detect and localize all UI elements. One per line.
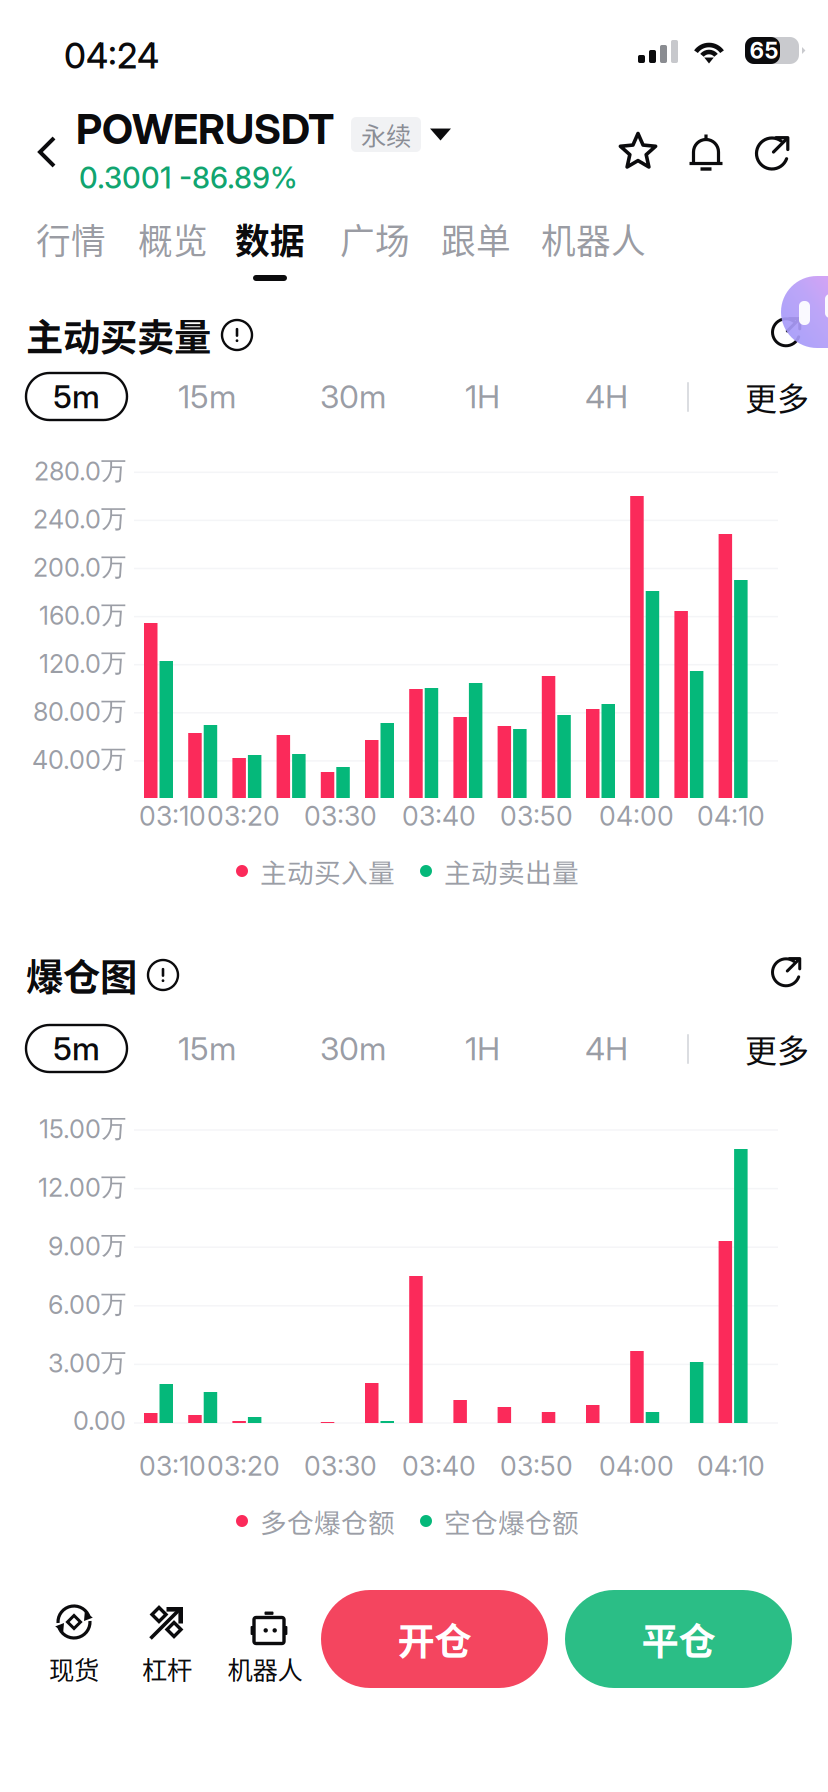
staticText: 6.00万 — [48, 1288, 126, 1320]
staticText: 03:40 — [402, 800, 476, 832]
button[interactable]: 4H — [571, 373, 642, 420]
button[interactable]: 行情 — [20, 208, 122, 270]
staticText: 03:50 — [500, 800, 573, 832]
staticText: 更多 — [745, 1025, 809, 1072]
staticText: 200.0万 — [33, 551, 126, 583]
button[interactable]: 5m — [26, 373, 127, 420]
staticText: 主动买入量 — [260, 852, 395, 890]
button[interactable]: Back — [14, 115, 80, 189]
button[interactable]: 1H — [451, 373, 514, 420]
staticText: 数据 — [235, 214, 305, 264]
staticText: 更多 — [745, 373, 809, 420]
staticText: 240.0万 — [33, 503, 126, 535]
staticText: 80.00万 — [33, 695, 126, 727]
staticText: 4H — [585, 377, 628, 416]
staticText: 15m — [178, 377, 236, 416]
staticText: 03:40 — [402, 1450, 476, 1482]
staticText: 永续 — [361, 116, 411, 153]
button[interactable]: 机器人 — [525, 208, 662, 270]
button[interactable]: 15m — [164, 373, 250, 420]
staticText: 04:10 — [697, 800, 765, 832]
staticText: POWERUSDT — [76, 104, 334, 154]
button[interactable]: 更多 — [731, 373, 823, 420]
button[interactable]: 1H — [451, 1025, 514, 1072]
staticText: 现货 — [49, 1650, 99, 1687]
staticText: 杠杆 — [142, 1650, 192, 1687]
staticText: 04:24 — [64, 35, 159, 77]
staticText: 平仓 — [641, 1612, 715, 1666]
staticText: 概览 — [138, 214, 208, 264]
staticText: 广场 — [340, 214, 410, 264]
button[interactable]: 机器人 — [209, 1603, 321, 1687]
staticText: 03:10 — [139, 800, 206, 832]
staticText: 5m — [53, 1029, 100, 1068]
button[interactable]: 现货 — [26, 1603, 122, 1687]
button[interactable]: 平仓 — [565, 1590, 792, 1688]
staticText: 30m — [320, 1029, 386, 1068]
button[interactable]: 广场 — [324, 208, 426, 270]
staticText: 行情 — [36, 214, 106, 264]
staticText: 跟单 — [441, 214, 511, 264]
staticText: 04:00 — [599, 1450, 674, 1482]
staticText: 机器人 — [227, 1650, 302, 1687]
staticText: 多仓爆仓额 — [260, 1502, 395, 1540]
staticText: 4H — [585, 1029, 628, 1068]
staticText: 12.00万 — [38, 1171, 126, 1203]
staticText: 9.00万 — [48, 1230, 126, 1262]
button[interactable]: 30m — [306, 1025, 400, 1072]
button[interactable]: Alerts — [670, 116, 742, 188]
button[interactable]: 跟单 — [425, 208, 527, 270]
button[interactable]: 开仓 — [321, 1590, 548, 1688]
staticText: 03:20 — [207, 1450, 280, 1482]
staticText: 3.00万 — [48, 1347, 126, 1379]
staticText: 主动买卖量 — [26, 308, 211, 362]
button[interactable]: 5m — [26, 1025, 127, 1072]
button[interactable]: Expand chart — [762, 947, 810, 995]
staticText: 5m — [53, 377, 100, 416]
button[interactable]: Expand chart — [762, 307, 810, 355]
staticText: 40.00万 — [32, 743, 126, 775]
staticText: 开仓 — [397, 1612, 471, 1666]
staticText: 03:30 — [304, 800, 377, 832]
staticText: 1H — [465, 377, 500, 416]
staticText: 15m — [178, 1029, 236, 1068]
staticText: 03:30 — [304, 1450, 377, 1482]
staticText: 04:10 — [697, 1450, 765, 1482]
button[interactable]: Share — [736, 116, 808, 188]
button[interactable]: 概览 — [122, 208, 224, 270]
staticText: 空仓爆仓额 — [444, 1502, 579, 1540]
button[interactable]: 更多 — [731, 1025, 823, 1072]
staticText: 0.3001 -86.89% — [79, 160, 298, 195]
button[interactable]: 30m — [306, 373, 400, 420]
staticText: 0.00 — [73, 1405, 126, 1436]
staticText: 04:00 — [599, 800, 674, 832]
staticText: 主动卖出量 — [444, 852, 579, 890]
button[interactable]: 15m — [164, 1025, 250, 1072]
staticText: 15.00万 — [39, 1112, 126, 1144]
staticText: 65 — [749, 37, 778, 64]
button[interactable]: 数据 — [219, 208, 321, 270]
staticText: 160.0万 — [39, 599, 126, 631]
staticText: 03:20 — [207, 800, 280, 832]
staticText: 30m — [320, 377, 386, 416]
button[interactable]: 杠杆 — [119, 1603, 215, 1687]
staticText: 爆仓图 — [26, 948, 137, 1002]
button[interactable]: Favourite — [602, 116, 674, 188]
button[interactable]: 4H — [571, 1025, 642, 1072]
staticText: 03:10 — [139, 1450, 206, 1482]
staticText: 机器人 — [541, 214, 646, 264]
staticText: 280.0万 — [34, 455, 126, 487]
button[interactable]: 永续 — [334, 107, 451, 154]
staticText: 120.0万 — [39, 647, 126, 679]
staticText: 03:50 — [500, 1450, 573, 1482]
staticText: 1H — [465, 1029, 500, 1068]
